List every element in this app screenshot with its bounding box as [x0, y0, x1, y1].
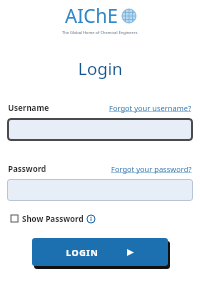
button[interactable]: LOGIN [32, 238, 168, 266]
button[interactable]: Information about show password [87, 215, 95, 223]
button[interactable] [7, 179, 193, 201]
button[interactable] [7, 118, 193, 141]
staticText: AIChE [65, 3, 118, 29]
button[interactable]: Forgot your password? [111, 164, 192, 174]
button[interactable]: Forgot your username? [109, 103, 192, 113]
staticText: LOGIN [66, 246, 99, 258]
staticText: Forgot your password? [111, 164, 192, 174]
staticText: Show Password [22, 213, 84, 224]
staticText: Login [78, 57, 123, 80]
staticText: Password [8, 163, 47, 174]
staticText: Username [8, 102, 49, 113]
staticText: Forgot your username? [109, 103, 192, 113]
button[interactable]: Show Password [11, 213, 95, 224]
staticText: The Global Home of Chemical Engineers [62, 30, 138, 35]
